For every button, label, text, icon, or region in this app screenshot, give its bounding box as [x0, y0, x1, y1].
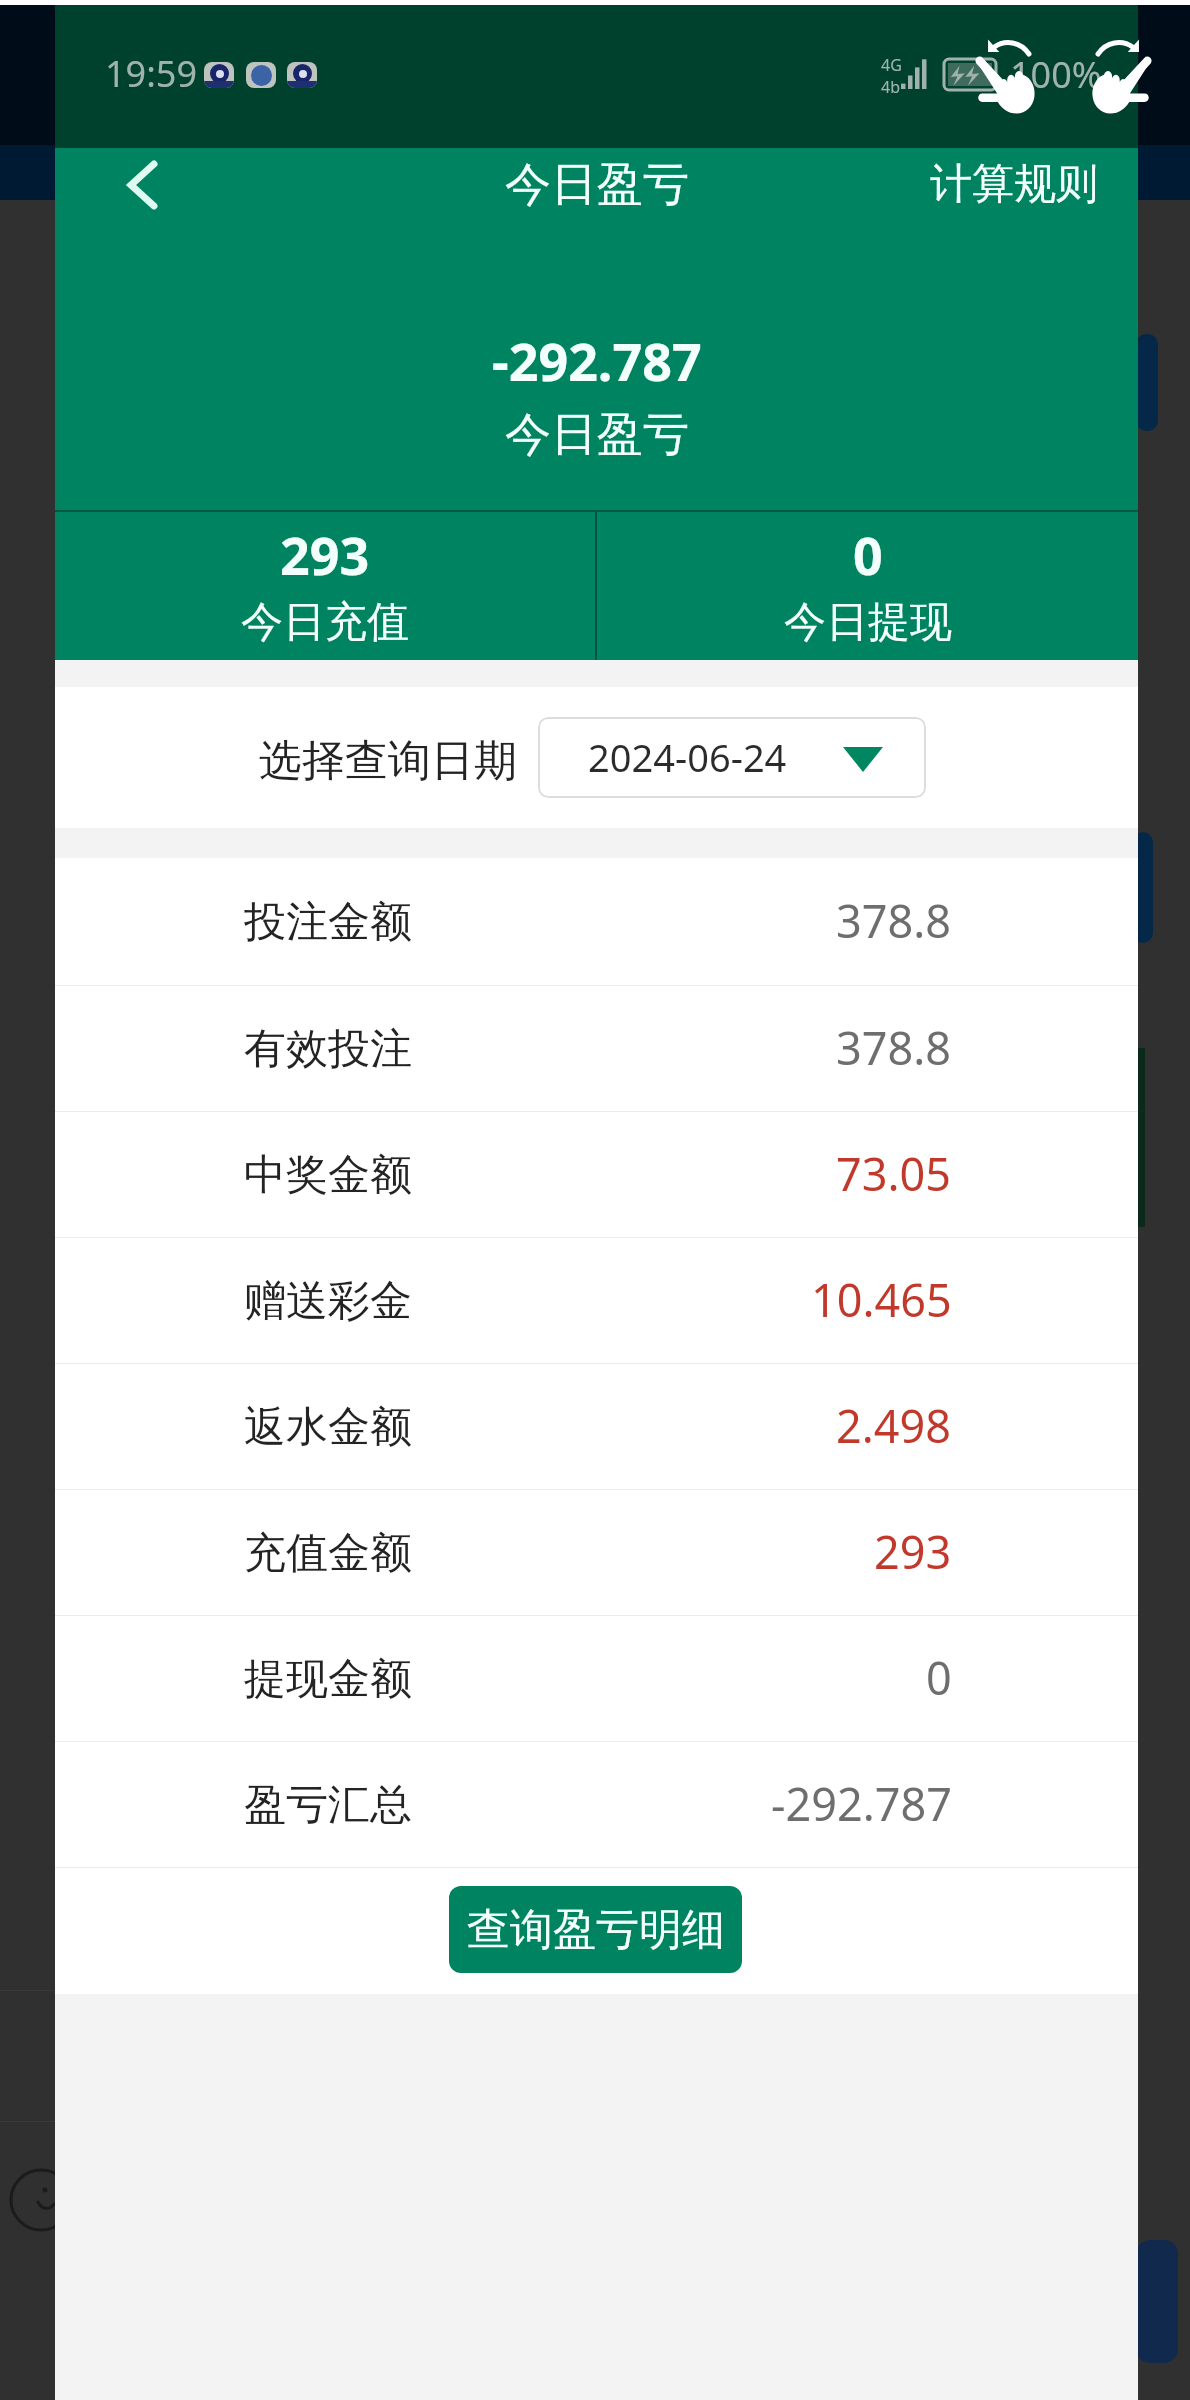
button[interactable]: 返水金额	[55, 1364, 1138, 1490]
staticText: 293	[874, 1521, 952, 1582]
button[interactable]: 中奖金额	[55, 1112, 1138, 1238]
button[interactable]: 有效投注	[55, 986, 1138, 1112]
staticText: 今日充值	[241, 596, 409, 649]
staticText: 选择查询日期	[259, 734, 517, 788]
staticText: 378.8	[836, 1017, 952, 1078]
button[interactable]: 计算规则	[930, 158, 1098, 211]
button[interactable]: 提现金额	[55, 1616, 1138, 1742]
staticText: 盈亏汇总	[244, 1779, 412, 1832]
button[interactable]: 0	[597, 512, 1138, 660]
staticText: 293	[280, 519, 370, 590]
button[interactable]: 赠送彩金	[55, 1238, 1138, 1364]
staticText: 4b	[881, 76, 900, 98]
staticText: 10.465	[811, 1269, 952, 1330]
button[interactable]: 盈亏汇总	[55, 1742, 1138, 1868]
button[interactable]: 充值金额	[55, 1490, 1138, 1616]
staticText: -292.787	[492, 325, 702, 396]
button[interactable]: 查询盈亏明细	[449, 1886, 742, 1973]
staticText: 2.498	[836, 1395, 952, 1456]
staticText: 0	[853, 519, 883, 590]
staticText: 4G	[881, 54, 902, 76]
staticText: 充值金额	[244, 1527, 412, 1580]
button[interactable]: 2024-06-24	[538, 717, 926, 798]
staticText: -292.787	[771, 1773, 952, 1834]
button[interactable]: 投注金额	[55, 858, 1138, 986]
staticText: 今日提现	[784, 596, 952, 649]
staticText: 赠送彩金	[244, 1275, 412, 1328]
staticText: 返水金额	[244, 1401, 412, 1454]
staticText: 2024-06-24	[588, 731, 787, 783]
staticText: 今日盈亏	[505, 156, 689, 214]
staticText: 100%	[1010, 50, 1102, 99]
staticText: 投注金额	[244, 896, 412, 949]
staticText: 查询盈亏明细	[467, 1903, 725, 1957]
button[interactable]: 293	[55, 512, 595, 660]
staticText: 有效投注	[244, 1023, 412, 1076]
staticText: 73.05	[836, 1143, 952, 1204]
button[interactable]: Back	[107, 149, 179, 221]
staticText: 0	[926, 1647, 952, 1708]
staticText: 19:59	[105, 49, 198, 98]
staticText: 提现金额	[244, 1653, 412, 1706]
staticText: 中奖金额	[244, 1149, 412, 1202]
staticText: 今日盈亏	[505, 406, 689, 464]
staticText: 378.8	[836, 890, 952, 951]
